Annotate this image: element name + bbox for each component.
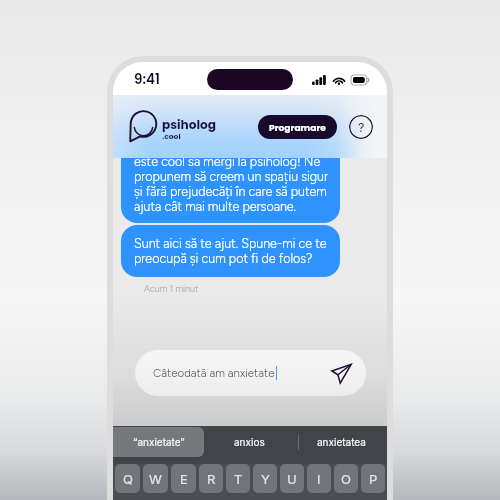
staticText: este cool să mergi la psiholog! Ne propu…	[134, 154, 334, 214]
staticText: Y	[261, 471, 270, 487]
staticText: U	[287, 471, 297, 487]
staticText: psiholog	[162, 116, 216, 133]
staticText: ?	[358, 120, 365, 135]
button[interactable]: Ajutor	[349, 115, 373, 139]
button[interactable]: “anxietate”	[113, 427, 204, 457]
button[interactable]: R	[199, 464, 223, 493]
staticText: W	[149, 471, 162, 487]
staticText: .cool	[162, 131, 181, 142]
staticText: anxios	[234, 436, 265, 448]
button[interactable]: O	[334, 464, 358, 493]
staticText: “anxietate”	[133, 436, 185, 448]
staticText: 9:41	[134, 70, 160, 89]
staticText: P	[369, 471, 378, 487]
staticText: Q	[123, 471, 133, 487]
button[interactable]: Q	[115, 464, 140, 493]
staticText: Programare	[269, 121, 326, 134]
staticText: Câteodată am anxietate	[153, 366, 275, 380]
button[interactable]: E	[171, 464, 196, 493]
staticText: E	[180, 471, 188, 487]
button[interactable]: I	[307, 464, 331, 493]
button[interactable]: P	[361, 464, 385, 493]
staticText: O	[341, 471, 351, 487]
button[interactable]: anxios	[204, 427, 295, 457]
button[interactable]: U	[280, 464, 304, 493]
button[interactable]: Programare	[258, 115, 337, 139]
staticText: I	[317, 471, 321, 487]
button[interactable]: anxietatea	[296, 427, 387, 457]
button[interactable]: W	[143, 464, 168, 493]
button[interactable]: T	[226, 464, 250, 493]
staticText: T	[234, 471, 243, 487]
staticText: R	[207, 471, 216, 487]
staticText: anxietatea	[317, 436, 366, 448]
staticText: Sunt aici să te ajut. Spune-mi ce te pre…	[134, 236, 334, 266]
button[interactable]: Câteodată am anxietate	[135, 350, 366, 396]
staticText: Acum 1 minut	[144, 283, 199, 294]
button[interactable]: Y	[253, 464, 277, 493]
other: Trimite	[331, 363, 352, 384]
